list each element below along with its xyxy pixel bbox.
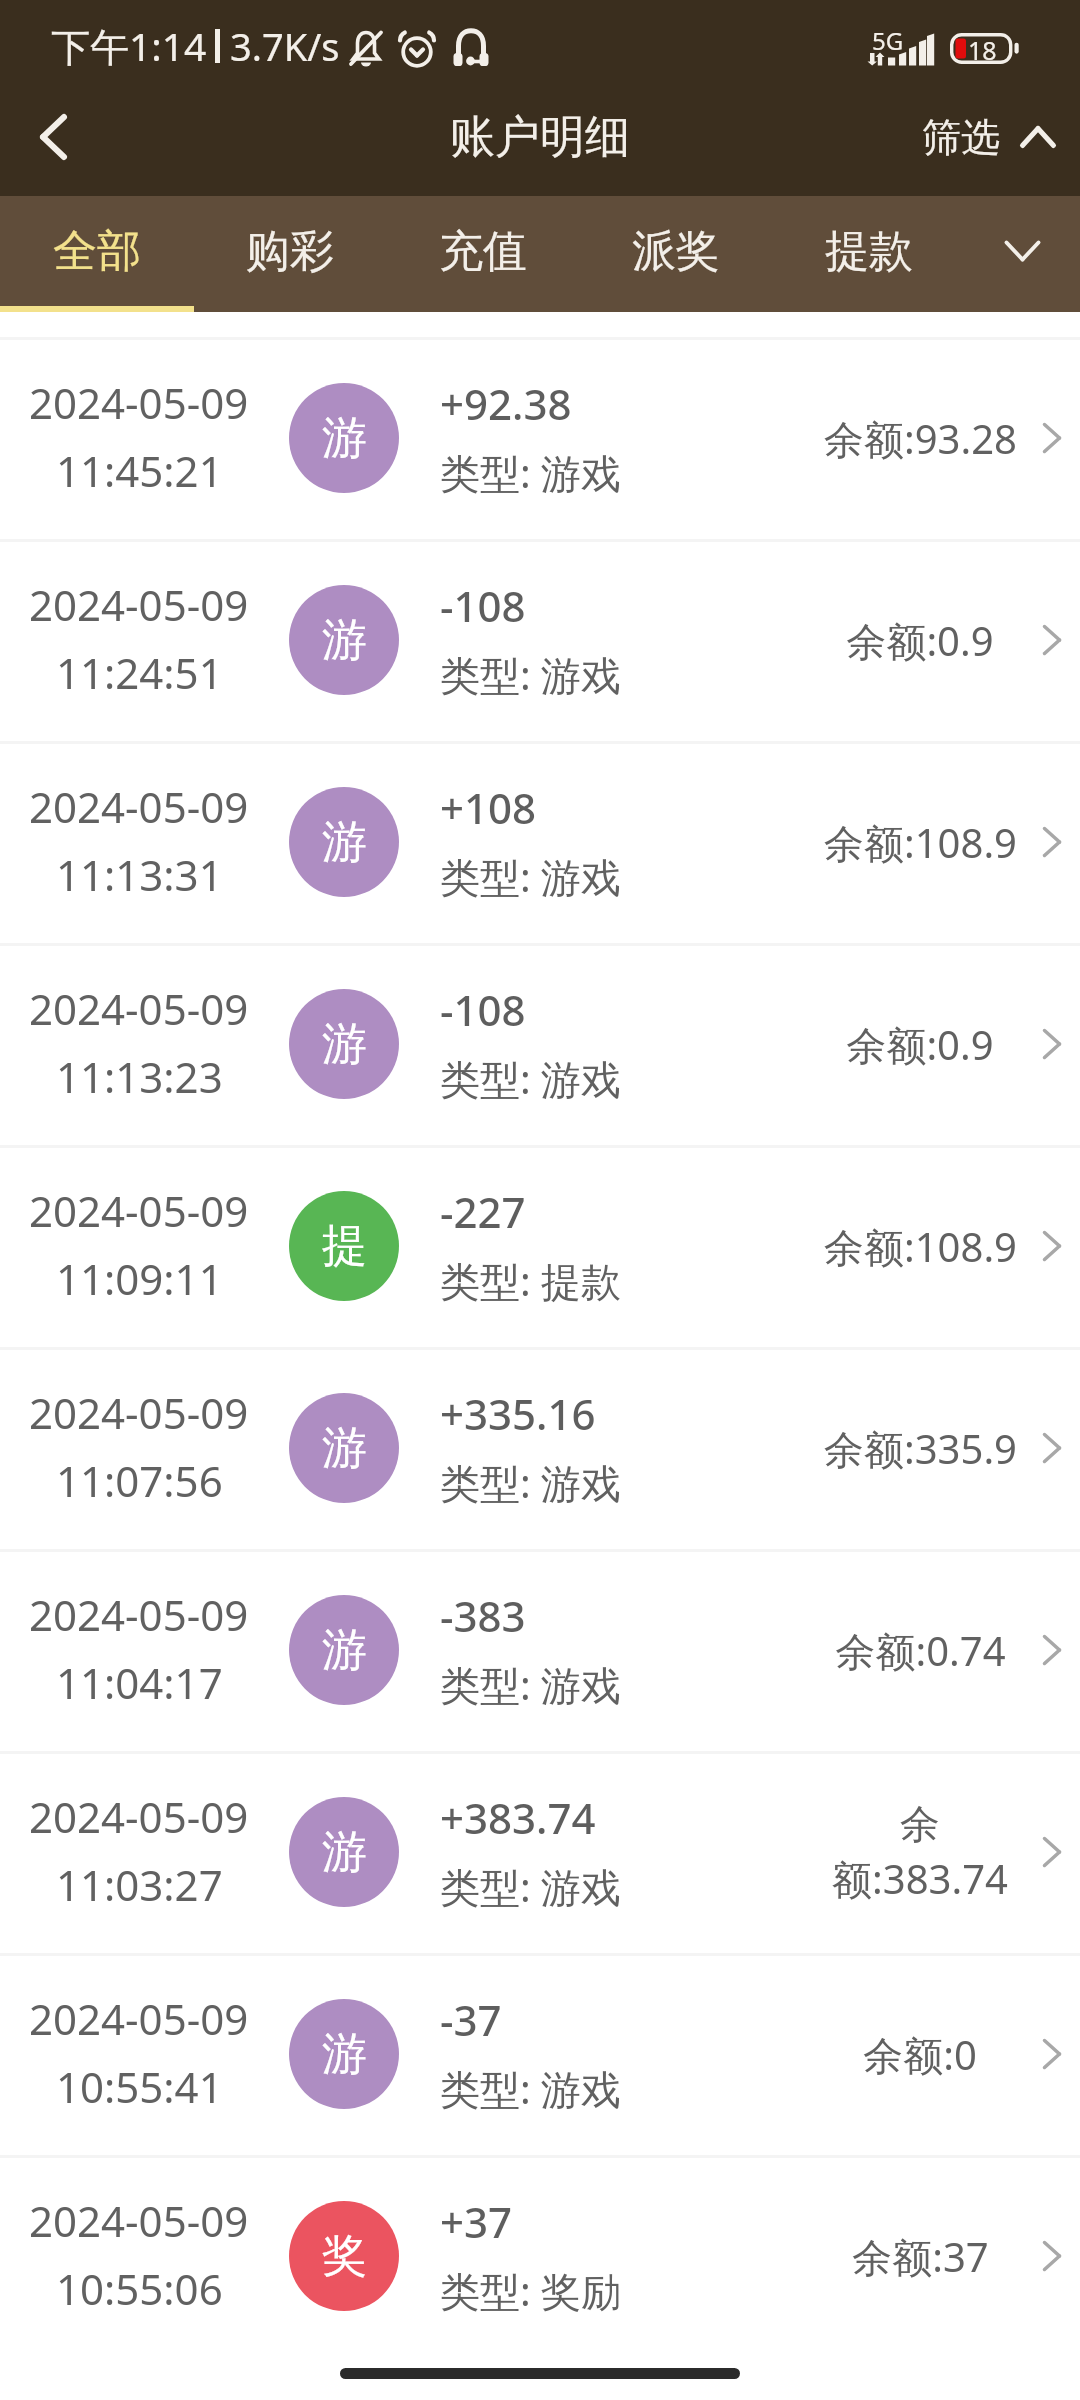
- staticText: 类型: 游戏: [440, 2061, 622, 2116]
- button[interactable]: 2024-05-09: [0, 539, 1080, 741]
- staticText: 2024-05-09: [29, 2192, 249, 2249]
- staticText: 2024-05-09: [29, 1384, 249, 1441]
- staticText: 2024-05-09: [29, 1788, 249, 1845]
- staticText: 游: [322, 1824, 367, 1881]
- staticText: 奖: [322, 2228, 367, 2285]
- button[interactable]: 2024-05-09: [0, 1145, 1080, 1347]
- staticText: +335.16: [440, 1385, 596, 1442]
- staticText: 游: [322, 1420, 367, 1477]
- staticText: 11:24:51: [56, 644, 223, 701]
- button[interactable]: 2024-05-09: [0, 1751, 1080, 1953]
- button[interactable]: 2024-05-09: [0, 943, 1080, 1145]
- button[interactable]: 筛选: [922, 98, 1080, 196]
- staticText: 11:45:21: [56, 442, 223, 499]
- button[interactable]: 2024-05-09: [0, 741, 1080, 943]
- button[interactable]: 2024-05-09: [0, 1953, 1080, 2155]
- button[interactable]: More filters: [965, 196, 1080, 312]
- staticText: 余额:0.74: [835, 1623, 1006, 1678]
- staticText: -37: [440, 1991, 502, 2048]
- staticText: 11:13:23: [56, 1048, 223, 1105]
- staticText: 类型: 游戏: [440, 1455, 622, 1510]
- button[interactable]: 提款: [772, 196, 965, 312]
- staticText: 筛选: [922, 113, 1000, 162]
- staticText: 余额:0.9: [846, 1017, 994, 1072]
- staticText: 余额:108.9: [824, 1219, 1017, 1274]
- staticText: -383: [440, 1587, 526, 1644]
- staticText: 余额:335.9: [824, 1421, 1017, 1476]
- staticText: 5G: [872, 24, 904, 57]
- staticText: 10:55:41: [56, 2058, 223, 2115]
- staticText: 余额:383.74: [813, 1799, 1027, 1906]
- staticText: 全部: [53, 224, 141, 279]
- button[interactable]: 2024-05-09: [0, 1549, 1080, 1751]
- staticText: 提款: [825, 224, 913, 279]
- staticText: 2024-05-09: [29, 778, 249, 835]
- button[interactable]: 全部: [0, 196, 193, 312]
- staticText: 类型: 游戏: [440, 1859, 622, 1914]
- button[interactable]: 2024-05-09: [0, 2155, 1080, 2357]
- staticText: +108: [440, 779, 537, 836]
- staticText: 账户明细: [450, 109, 630, 166]
- staticText: 11:09:11: [56, 1250, 223, 1307]
- staticText: 类型: 游戏: [440, 849, 622, 904]
- staticText: +37: [440, 2193, 513, 2250]
- staticText: 购彩: [246, 224, 334, 279]
- button[interactable]: 购彩: [193, 196, 386, 312]
- staticText: 2024-05-09: [29, 1586, 249, 1643]
- staticText: +92.38: [440, 375, 572, 432]
- button[interactable]: 2024-05-09: [0, 1347, 1080, 1549]
- staticText: 充值: [439, 224, 527, 279]
- staticText: 11:13:31: [56, 846, 223, 903]
- staticText: 提: [322, 1218, 367, 1275]
- staticText: 余额:37: [852, 2229, 989, 2284]
- staticText: 下午1:14: [51, 19, 207, 72]
- button[interactable]: Back: [0, 98, 106, 196]
- staticText: 派奖: [632, 224, 720, 279]
- staticText: 游: [322, 814, 367, 871]
- staticText: 类型: 游戏: [440, 1051, 622, 1106]
- staticText: 2024-05-09: [29, 1990, 249, 2047]
- staticText: 游: [322, 1016, 367, 1073]
- staticText: -108: [440, 577, 526, 634]
- staticText: 2024-05-09: [29, 374, 249, 431]
- staticText: 游: [322, 410, 367, 467]
- staticText: 游: [322, 612, 367, 669]
- button[interactable]: 充值: [386, 196, 579, 312]
- staticText: 余额:0.9: [846, 613, 994, 668]
- staticText: -227: [440, 1183, 526, 1240]
- staticText: 游: [322, 2026, 367, 2083]
- staticText: -108: [440, 981, 526, 1038]
- staticText: 11:03:27: [56, 1856, 223, 1913]
- staticText: 类型: 游戏: [440, 445, 622, 500]
- staticText: 余额:108.9: [824, 815, 1017, 870]
- staticText: 类型: 游戏: [440, 647, 622, 702]
- staticText: 类型: 游戏: [440, 1657, 622, 1712]
- staticText: 11:04:17: [56, 1654, 223, 1711]
- staticText: 类型: 提款: [440, 1253, 622, 1308]
- staticText: 游: [322, 1622, 367, 1679]
- button[interactable]: 派奖: [579, 196, 772, 312]
- staticText: 10:55:06: [56, 2260, 223, 2317]
- staticText: +383.74: [440, 1789, 596, 1846]
- staticText: 2024-05-09: [29, 980, 249, 1037]
- staticText: 11:07:56: [56, 1452, 223, 1509]
- staticText: 2024-05-09: [29, 576, 249, 633]
- staticText: 18: [968, 33, 997, 64]
- staticText: 余额:93.28: [824, 411, 1017, 466]
- staticText: 3.7K/s: [230, 20, 340, 72]
- staticText: 2024-05-09: [29, 1182, 249, 1239]
- staticText: 类型: 奖励: [440, 2263, 622, 2318]
- staticText: 余额:0: [863, 2027, 977, 2082]
- button[interactable]: 2024-05-09: [0, 337, 1080, 539]
